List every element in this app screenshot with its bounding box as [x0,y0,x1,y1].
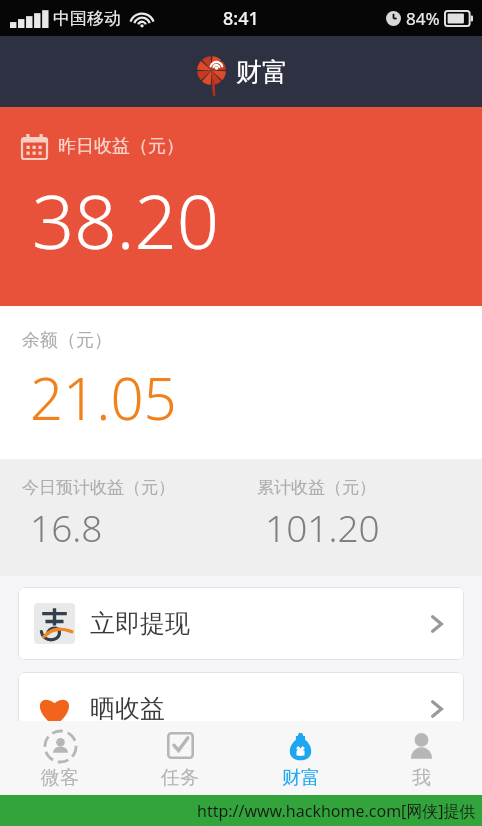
staticText: 晒收益 [90,693,165,724]
button[interactable]: 立即提现 [18,587,464,660]
staticText: 8:41 [223,6,259,31]
button[interactable]: 财富 [240,721,361,795]
staticText: http://www.hackhome.com[网侠]提供 [197,800,476,822]
staticText: 任务 [161,766,199,790]
staticText: 16.8 [30,502,103,552]
staticText: 累计收益（元） [257,477,376,498]
staticText: 21.05 [30,358,177,437]
staticText: 84% [406,7,440,30]
staticText: 38.20 [32,170,220,271]
staticText: 立即提现 [90,608,190,639]
staticText: 财富 [236,56,288,89]
staticText: 101.20 [265,502,380,552]
staticText: 昨日收益（元） [58,135,184,158]
staticText: 今日预计收益（元） [22,477,175,498]
button[interactable]: 任务 [120,721,240,795]
staticText: 余额（元） [22,329,112,352]
staticText: 微客 [41,766,79,790]
button[interactable]: 晒收益 [18,672,464,745]
button[interactable]: 微客 [0,721,120,795]
staticText: 财富 [282,766,320,790]
staticText: 中国移动 [53,8,121,29]
staticText: 我 [412,766,431,790]
button[interactable]: 我 [361,721,482,795]
